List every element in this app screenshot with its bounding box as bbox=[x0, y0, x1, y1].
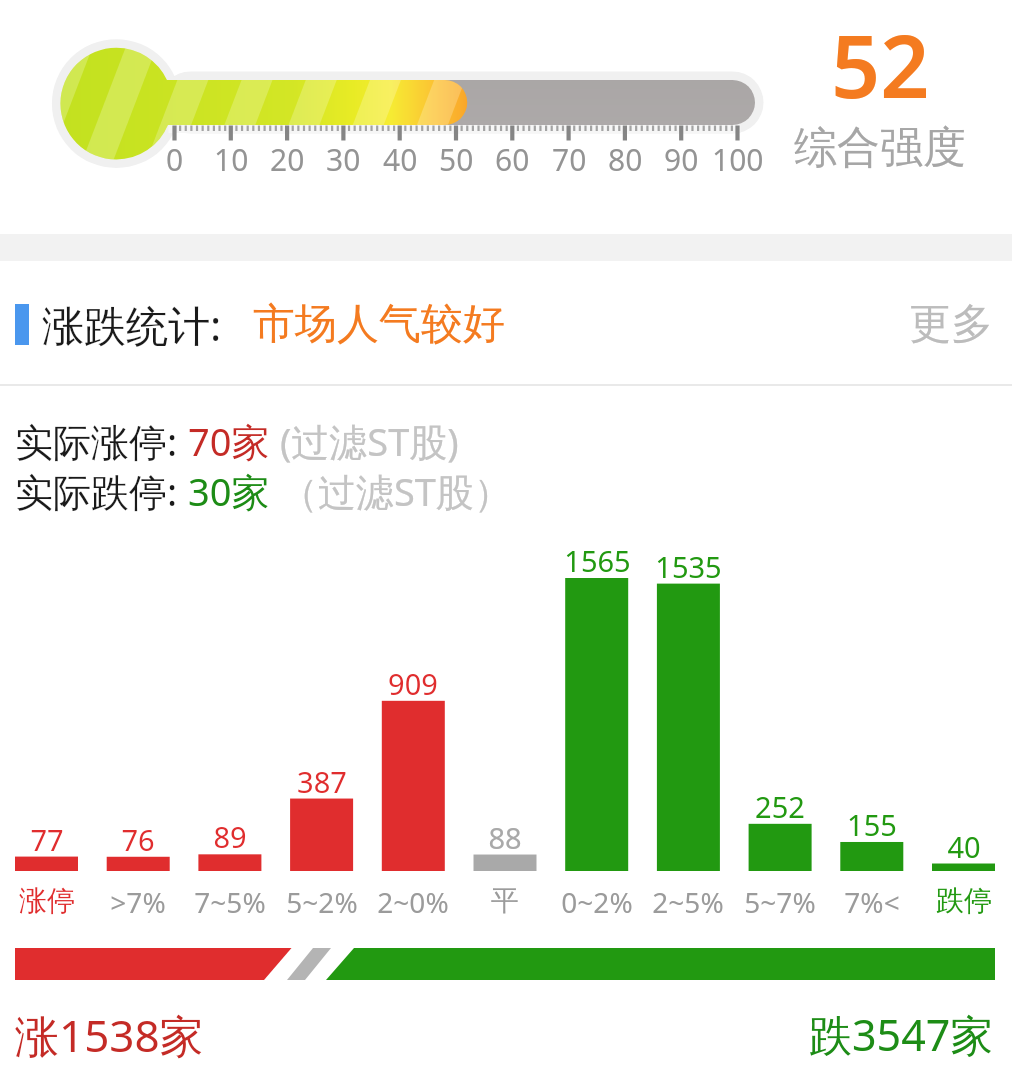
staticText: 80 bbox=[608, 139, 643, 180]
staticText: 155 bbox=[847, 805, 897, 844]
staticText: 2~5% bbox=[652, 883, 724, 921]
staticText: 市场人气较好 bbox=[253, 298, 505, 351]
staticText: 52 bbox=[831, 6, 930, 123]
staticText: 涨跌统计: bbox=[42, 296, 222, 353]
staticText: 76 bbox=[121, 820, 155, 859]
staticText: 5~7% bbox=[744, 883, 816, 921]
staticText: 50 bbox=[439, 139, 474, 180]
button[interactable]: 涨跌统计: bbox=[0, 263, 885, 385]
staticText: 0 bbox=[166, 139, 184, 180]
staticText: 涨停 bbox=[19, 883, 75, 918]
staticText: 综合强度 bbox=[794, 121, 966, 175]
button[interactable]: 更多 bbox=[885, 263, 1012, 385]
staticText: 跌3547家 bbox=[809, 1005, 994, 1064]
staticText: 252 bbox=[755, 787, 805, 826]
staticText: 更多 bbox=[909, 298, 993, 351]
staticText: 909 bbox=[388, 664, 438, 703]
staticText: 89 bbox=[213, 817, 247, 856]
staticText: 1565 bbox=[564, 541, 631, 580]
staticText: 7~5% bbox=[194, 883, 266, 921]
staticText: 90 bbox=[664, 139, 699, 180]
staticText: 2~0% bbox=[377, 883, 449, 921]
staticText: 涨1538家 bbox=[15, 1005, 204, 1065]
staticText: 30 bbox=[326, 139, 361, 180]
staticText: 20 bbox=[270, 139, 305, 180]
staticText: 40 bbox=[383, 139, 418, 180]
staticText: 387 bbox=[297, 762, 347, 801]
staticText: 60 bbox=[495, 139, 530, 180]
staticText: 实际涨停: bbox=[15, 415, 188, 467]
staticText: 10 bbox=[214, 139, 249, 180]
staticText: 5~2% bbox=[286, 883, 358, 921]
staticText: 7%< bbox=[844, 883, 900, 921]
staticText: 实际跌停: bbox=[15, 465, 188, 517]
staticText: 88 bbox=[488, 818, 522, 857]
staticText: 100 bbox=[712, 139, 764, 180]
staticText: 0~2% bbox=[561, 883, 633, 921]
staticText: 70家 bbox=[188, 415, 270, 467]
staticText: 30家 bbox=[188, 465, 270, 517]
staticText: (过滤ST股) bbox=[270, 415, 459, 467]
staticText: 跌停 bbox=[936, 883, 992, 918]
staticText: 77 bbox=[30, 820, 64, 859]
staticText: 70 bbox=[552, 139, 587, 180]
staticText: 1535 bbox=[655, 547, 722, 586]
staticText: （过滤ST股） bbox=[270, 465, 512, 517]
staticText: >7% bbox=[110, 883, 166, 921]
staticText: 平 bbox=[491, 883, 519, 918]
staticText: 40 bbox=[947, 827, 981, 866]
